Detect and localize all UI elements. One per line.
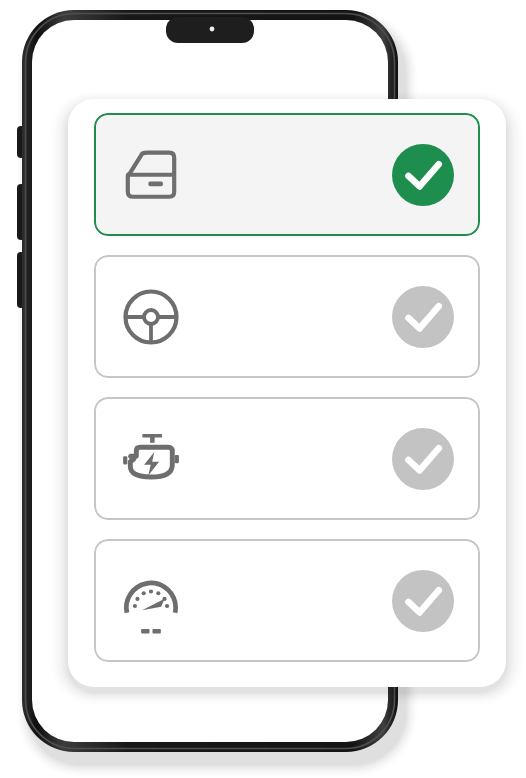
button[interactable]: Speedometer check <box>94 539 480 662</box>
button[interactable]: Steering check <box>94 255 480 378</box>
button[interactable]: Engine check <box>94 397 480 520</box>
button[interactable]: Doors check complete <box>94 113 480 236</box>
